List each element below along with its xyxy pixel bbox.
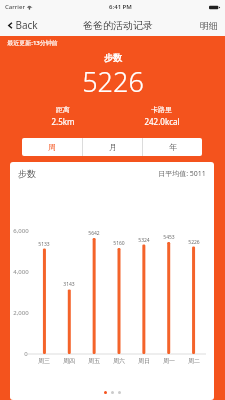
- staticText: 5160: [113, 240, 125, 247]
- staticText: 周六: [113, 357, 125, 365]
- staticText: Carrier: [5, 3, 25, 11]
- staticText: 5226: [82, 63, 144, 100]
- staticText: 6:41 PM: [109, 3, 132, 11]
- staticText: 周日: [138, 357, 150, 365]
- staticText: 周二: [188, 357, 200, 365]
- staticText: 5642: [88, 230, 100, 237]
- button[interactable]: 月: [83, 138, 142, 156]
- staticText: 周四: [63, 357, 75, 365]
- staticText: 日平均值: 5011: [158, 169, 206, 179]
- staticText: 月: [109, 142, 117, 152]
- staticText: 5133: [38, 241, 50, 248]
- staticText: 周五: [88, 357, 100, 365]
- staticText: 周: [48, 142, 56, 152]
- staticText: 周三: [38, 357, 50, 365]
- staticText: 242.0kcal: [144, 116, 180, 127]
- staticText: 年: [169, 142, 177, 152]
- staticText: 5324: [138, 237, 150, 244]
- staticText: 2,000: [13, 309, 29, 317]
- staticText: 4,000: [13, 268, 29, 276]
- staticText: 明细: [200, 20, 218, 31]
- button[interactable]: 周: [22, 138, 82, 156]
- staticText: 距离: [56, 105, 70, 114]
- staticText: Back: [15, 18, 38, 32]
- staticText: 6,000: [13, 227, 29, 235]
- staticText: 2.5km: [51, 116, 75, 127]
- staticText: 步数: [18, 168, 36, 179]
- button[interactable]: Back: [4, 15, 40, 35]
- staticText: 5453: [163, 234, 175, 241]
- staticText: 卡路里: [151, 105, 172, 114]
- staticText: 5226: [188, 239, 200, 246]
- button[interactable]: 年: [143, 138, 202, 156]
- staticText: 最近更新:13分钟前: [7, 39, 58, 47]
- staticText: 步数: [104, 52, 122, 63]
- button[interactable]: 明细: [197, 17, 221, 34]
- staticText: 0: [24, 350, 28, 358]
- staticText: 爸爸的活动记录: [83, 19, 153, 32]
- staticText: 3143: [63, 281, 75, 288]
- staticText: 周一: [163, 357, 175, 365]
